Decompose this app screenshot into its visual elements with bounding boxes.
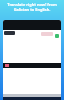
staticText: Translate right now! from Galician to En… (7, 2, 57, 12)
